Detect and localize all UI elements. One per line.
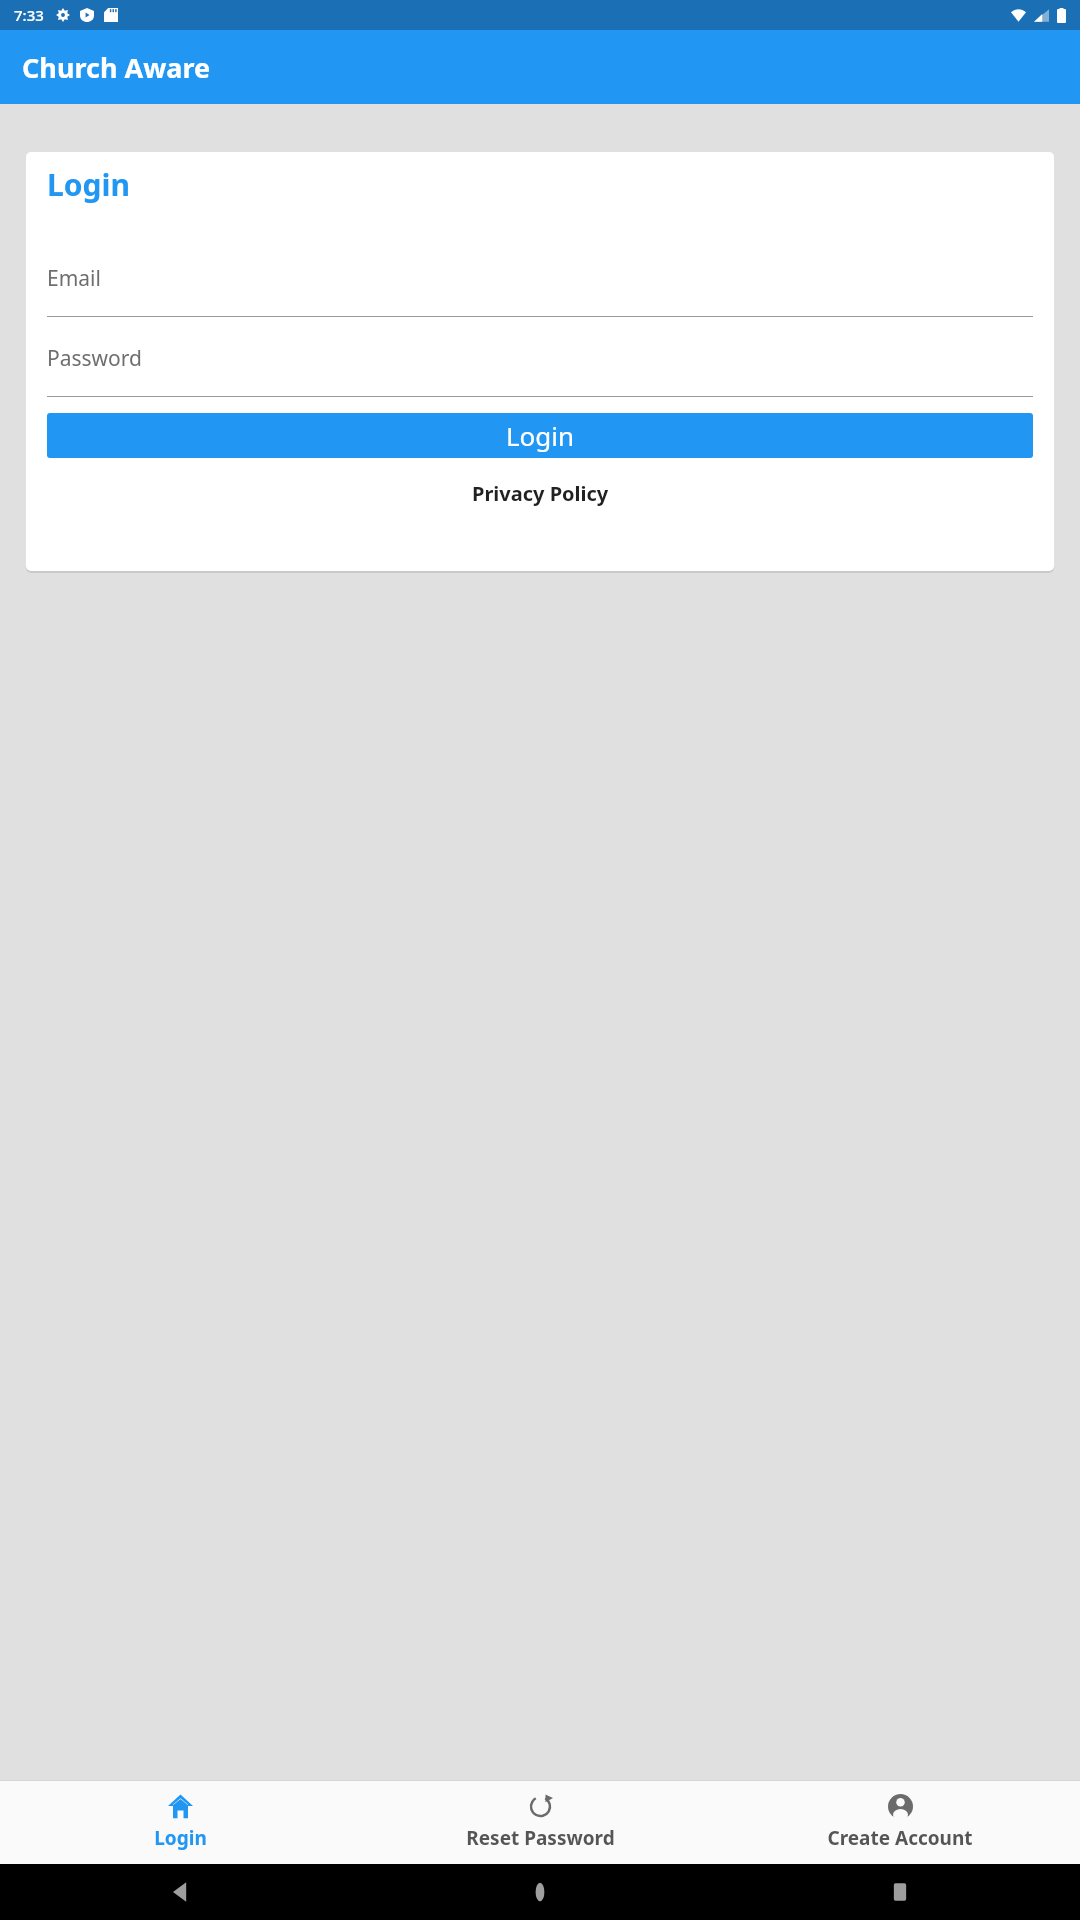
staticText: 7:33: [14, 5, 44, 25]
button[interactable]: Privacy Policy: [47, 480, 1033, 507]
button[interactable]: Create Account: [720, 1788, 1080, 1857]
button[interactable]: Password: [47, 344, 1033, 397]
staticText: Login: [506, 418, 575, 453]
other: Login home: [168, 1794, 193, 1819]
button[interactable]: Login: [47, 413, 1033, 458]
staticText: Login: [154, 1825, 207, 1851]
button[interactable]: Recents: [889, 1881, 911, 1903]
staticText: Church Aware: [22, 49, 211, 86]
button[interactable]: Reset Password: [360, 1788, 720, 1857]
staticText: Password: [47, 344, 142, 373]
button[interactable]: Login home: [0, 1788, 360, 1857]
staticText: Reset Password: [466, 1825, 615, 1851]
staticText: Privacy Policy: [472, 480, 609, 507]
staticText: Create Account: [827, 1825, 973, 1851]
button[interactable]: Home: [529, 1881, 551, 1903]
staticText: Email: [47, 264, 101, 293]
button[interactable]: Email: [47, 264, 1033, 317]
staticText: Login: [47, 164, 130, 205]
other: Create Account: [888, 1794, 913, 1819]
other: Reset Password: [528, 1794, 553, 1819]
button[interactable]: Back: [169, 1881, 191, 1903]
